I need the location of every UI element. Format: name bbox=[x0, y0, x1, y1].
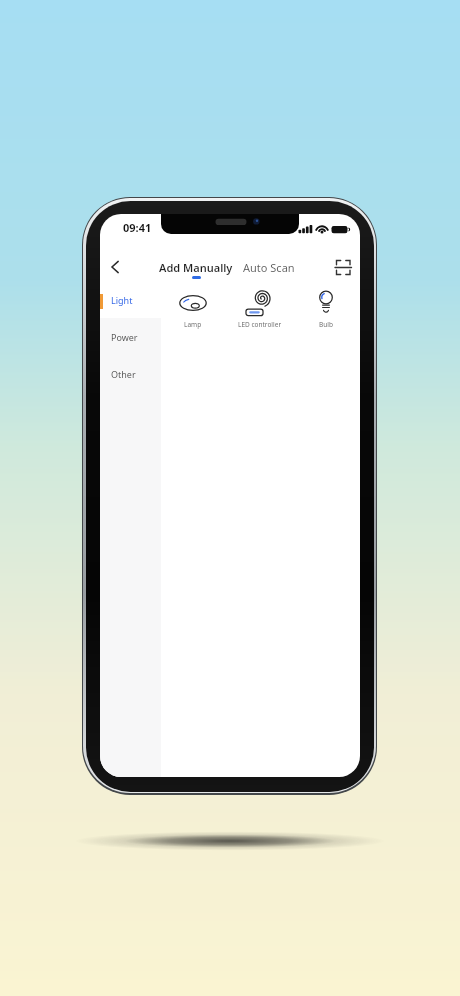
button[interactable]: Light bbox=[100, 282, 161, 318]
button[interactable] bbox=[335, 260, 352, 277]
staticText: Bulb bbox=[319, 320, 333, 329]
button[interactable] bbox=[104, 256, 126, 278]
staticText: 09:41 bbox=[123, 220, 152, 235]
button[interactable]: Add Manually bbox=[156, 254, 236, 280]
button[interactable]: Auto Scan bbox=[229, 254, 309, 280]
button[interactable] bbox=[227, 282, 294, 337]
staticText: Auto Scan bbox=[243, 260, 295, 275]
button[interactable]: Power bbox=[100, 318, 161, 355]
staticText: LED controller bbox=[238, 320, 282, 329]
staticText: Add Manually bbox=[159, 260, 233, 275]
button[interactable] bbox=[161, 282, 227, 337]
staticText: Lamp bbox=[184, 320, 202, 329]
staticText: Other bbox=[111, 368, 136, 380]
button[interactable]: Other bbox=[100, 355, 161, 392]
staticText: Light bbox=[111, 294, 133, 306]
staticText: Power bbox=[111, 331, 138, 343]
button[interactable] bbox=[294, 282, 360, 337]
